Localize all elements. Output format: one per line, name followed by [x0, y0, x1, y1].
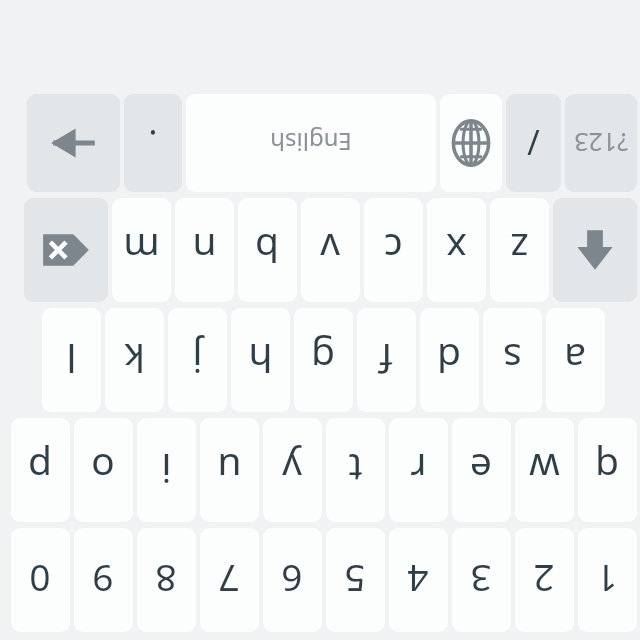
button[interactable]: d: [420, 308, 479, 412]
staticText: b: [255, 223, 279, 276]
staticText: o: [91, 443, 115, 496]
staticText: 9: [92, 555, 114, 605]
button[interactable]: q: [578, 418, 637, 522]
staticText: w: [529, 443, 560, 496]
staticText: v: [320, 223, 340, 276]
button[interactable]: 5: [326, 528, 385, 632]
button[interactable]: c: [364, 198, 423, 302]
button[interactable]: 9: [74, 528, 133, 632]
staticText: d: [437, 333, 461, 386]
button[interactable]: p: [11, 418, 70, 522]
staticText: q: [595, 443, 619, 496]
staticText: z: [510, 223, 529, 276]
staticText: m: [123, 223, 160, 276]
button[interactable]: 2: [515, 528, 574, 632]
button[interactable]: a: [546, 308, 605, 412]
staticText: 2: [533, 555, 555, 605]
staticText: h: [248, 333, 273, 386]
staticText: 7: [218, 555, 240, 605]
button[interactable]: /: [506, 94, 561, 192]
button[interactable]: e: [452, 418, 511, 522]
staticText: u: [217, 443, 242, 496]
button[interactable]: n: [175, 198, 234, 302]
staticText: English: [270, 126, 352, 159]
button[interactable]: m: [112, 198, 171, 302]
staticText: l: [66, 333, 77, 386]
staticText: x: [446, 223, 467, 276]
button[interactable]: Shift: [553, 198, 637, 302]
button[interactable]: Backspace: [24, 198, 108, 302]
staticText: j: [192, 333, 203, 386]
button[interactable]: s: [483, 308, 542, 412]
button[interactable]: o: [74, 418, 133, 522]
staticText: n: [192, 223, 217, 276]
button[interactable]: k: [105, 308, 164, 412]
button[interactable]: i: [137, 418, 196, 522]
button[interactable]: t: [326, 418, 385, 522]
button[interactable]: f: [357, 308, 416, 412]
staticText: t: [348, 443, 363, 496]
staticText: c: [384, 223, 403, 276]
button[interactable]: 1: [578, 528, 637, 632]
button[interactable]: 8: [137, 528, 196, 632]
button[interactable]: b: [238, 198, 297, 302]
staticText: 1: [596, 555, 618, 605]
button[interactable]: 4: [389, 528, 448, 632]
button[interactable]: English: [186, 94, 436, 192]
button[interactable]: Enter: [27, 94, 120, 192]
button[interactable]: v: [301, 198, 360, 302]
button[interactable]: .: [124, 94, 182, 192]
staticText: 6: [281, 555, 303, 605]
staticText: y: [282, 443, 302, 496]
button[interactable]: u: [200, 418, 259, 522]
button[interactable]: h: [231, 308, 290, 412]
button[interactable]: z: [490, 198, 549, 302]
staticText: e: [470, 443, 492, 496]
staticText: 4: [407, 555, 429, 605]
staticText: 0: [29, 555, 51, 605]
staticText: p: [28, 443, 52, 496]
staticText: a: [564, 333, 586, 386]
staticText: r: [410, 443, 427, 496]
button[interactable]: 6: [263, 528, 322, 632]
button[interactable]: j: [168, 308, 227, 412]
staticText: /: [527, 120, 540, 166]
staticText: s: [503, 333, 522, 386]
button[interactable]: ?123: [565, 94, 637, 192]
staticText: ?123: [574, 126, 628, 160]
staticText: i: [161, 443, 172, 496]
button[interactable]: w: [515, 418, 574, 522]
button[interactable]: r: [389, 418, 448, 522]
button[interactable]: 0: [11, 528, 70, 632]
staticText: g: [311, 333, 335, 386]
staticText: f: [379, 333, 393, 386]
staticText: 8: [155, 555, 177, 605]
button[interactable]: g: [294, 308, 353, 412]
button[interactable]: l: [42, 308, 101, 412]
button[interactable]: 7: [200, 528, 259, 632]
button[interactable]: y: [263, 418, 322, 522]
button[interactable]: x: [427, 198, 486, 302]
button[interactable]: Change language: [440, 94, 502, 192]
staticText: 5: [344, 555, 366, 605]
button[interactable]: 3: [452, 528, 511, 632]
staticText: .: [148, 120, 158, 166]
staticText: 3: [470, 555, 492, 605]
staticText: k: [124, 333, 145, 386]
